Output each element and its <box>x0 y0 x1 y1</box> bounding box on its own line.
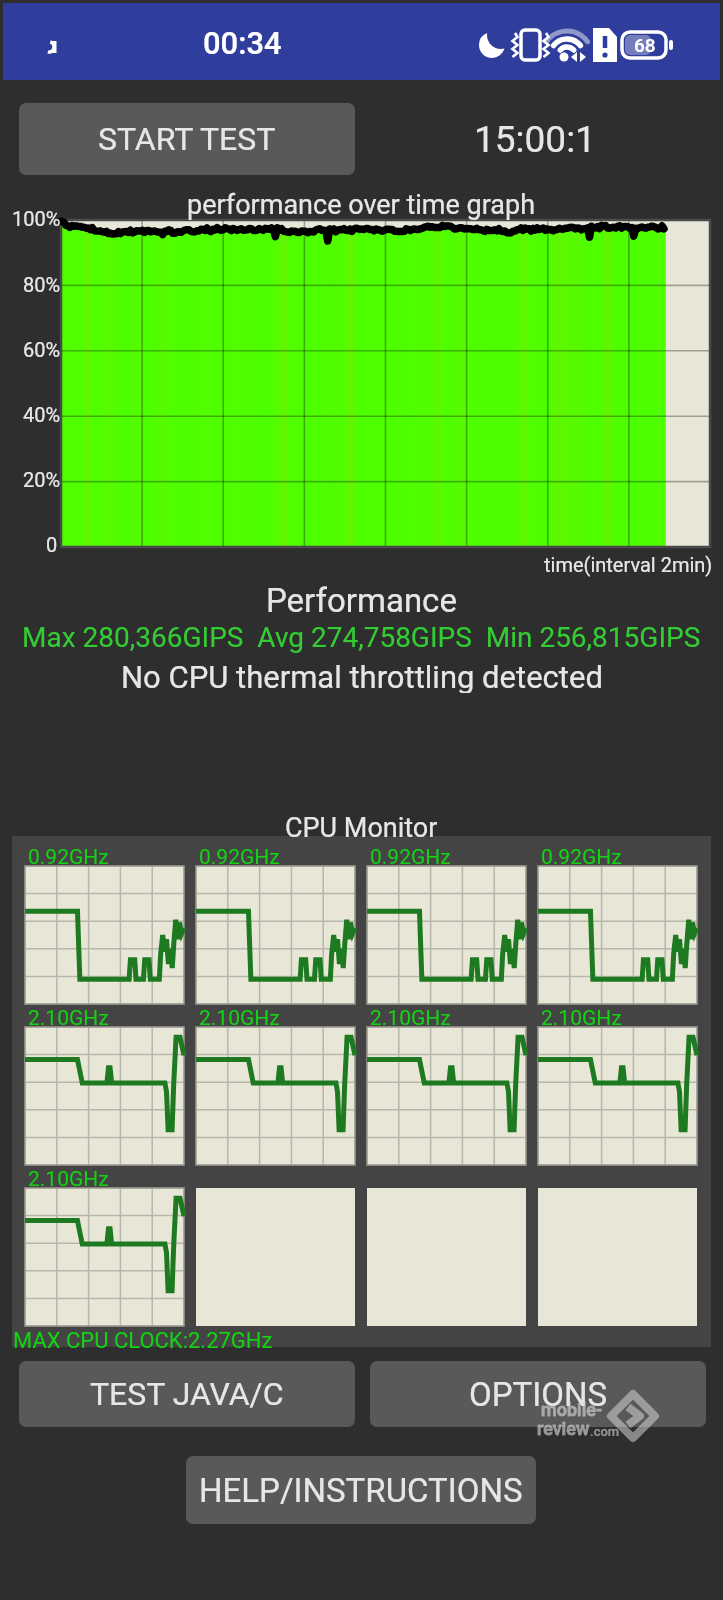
button[interactable]: START TEST <box>19 103 355 175</box>
staticText: 2.10GHz <box>199 1006 280 1028</box>
staticText: MAX CPU CLOCK:2.27GHz <box>13 1328 273 1350</box>
staticText: OPTIONS <box>469 1375 608 1414</box>
staticText: 40% <box>23 403 61 425</box>
staticText: HELP/INSTRUCTIONS <box>199 1471 523 1510</box>
staticText: 0 <box>46 533 58 555</box>
staticText: performance over time graph <box>187 189 536 221</box>
staticText: 2.10GHz <box>370 1006 451 1028</box>
staticText: 00:34 <box>203 25 282 61</box>
staticText: .com <box>590 1424 620 1439</box>
staticText: review <box>537 1418 590 1438</box>
staticText: 20% <box>23 468 61 490</box>
staticText: 2.10GHz <box>541 1006 622 1028</box>
button[interactable]: OPTIONS <box>370 1361 706 1427</box>
staticText: 0.92GHz <box>541 845 622 867</box>
staticText: 68 <box>634 34 656 56</box>
button[interactable]: HELP/INSTRUCTIONS <box>186 1456 536 1524</box>
staticText: 0.92GHz <box>199 845 280 867</box>
staticText: 100% <box>12 207 61 229</box>
staticText: CPU Monitor <box>285 812 438 844</box>
staticText: 80% <box>23 273 61 295</box>
staticText: 2.10GHz <box>28 1167 109 1189</box>
staticText: 0.92GHz <box>370 845 451 867</box>
staticText: mobile- <box>541 1399 602 1419</box>
staticText: 0.92GHz <box>28 845 109 867</box>
staticText: 60% <box>23 338 61 360</box>
staticText: START TEST <box>98 120 276 158</box>
staticText: Max 280,366GIPS Avg 274,758GIPS Min 256,… <box>22 621 701 654</box>
staticText: time(interval 2min) <box>544 553 713 576</box>
staticText: TEST JAVA/C <box>90 1375 284 1413</box>
staticText: 2.10GHz <box>28 1006 109 1028</box>
button[interactable]: TEST JAVA/C <box>19 1361 355 1427</box>
staticText: No CPU thermal throttling detected <box>121 659 603 693</box>
staticText: Performance <box>266 581 457 617</box>
staticText: 15:00:1 <box>474 118 596 161</box>
